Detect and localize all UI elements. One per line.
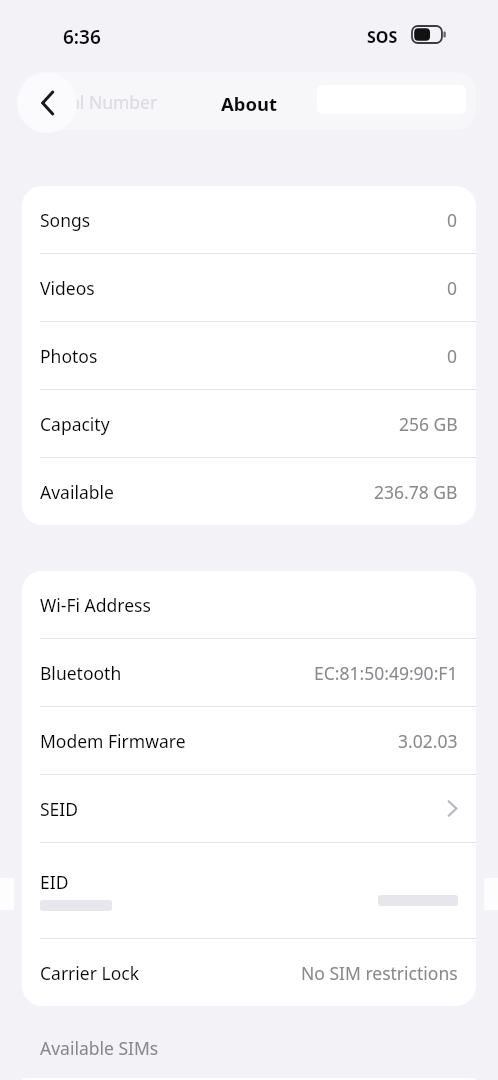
staticText: Available SIMs: [40, 1036, 159, 1060]
staticText: 3.02.03: [398, 729, 458, 753]
button[interactable]: Carrier Lock: [22, 939, 476, 1006]
staticText: SEID: [40, 797, 79, 821]
staticText: 0: [447, 208, 458, 232]
staticText: 236.78 GB: [374, 480, 458, 504]
button[interactable]: Back: [17, 73, 77, 133]
button[interactable]: Photos: [22, 322, 476, 389]
staticText: EID: [40, 870, 69, 894]
button[interactable]: Songs: [22, 186, 476, 253]
button[interactable]: Capacity: [22, 390, 476, 457]
staticText: Photos: [40, 344, 98, 368]
staticText: Capacity: [40, 412, 110, 436]
staticText: EC:81:50:49:90:F1: [314, 661, 458, 685]
staticText: About: [0, 91, 498, 116]
staticText: al Number: [70, 90, 158, 114]
staticText: Wi-Fi Address: [40, 593, 151, 617]
staticText: Songs: [40, 208, 91, 232]
staticText: Videos: [40, 276, 95, 300]
staticText: 256 GB: [399, 412, 458, 436]
button[interactable]: Videos: [22, 254, 476, 321]
button[interactable]: Modem Firmware: [22, 707, 476, 774]
button[interactable]: Available: [22, 458, 476, 525]
staticText: Bluetooth: [40, 661, 122, 685]
button[interactable]: SEID: [22, 775, 476, 842]
staticText: SOS: [367, 26, 398, 48]
staticText: 6:36: [63, 24, 101, 50]
button[interactable]: EID: [22, 843, 476, 938]
staticText: Carrier Lock: [40, 961, 139, 985]
staticText: Available: [40, 480, 114, 504]
staticText: Modem Firmware: [40, 729, 186, 753]
button[interactable]: Wi-Fi Address: [22, 571, 476, 638]
staticText: 0: [447, 344, 458, 368]
staticText: No SIM restrictions: [301, 961, 458, 985]
button[interactable]: Bluetooth: [22, 639, 476, 706]
staticText: 0: [447, 276, 458, 300]
